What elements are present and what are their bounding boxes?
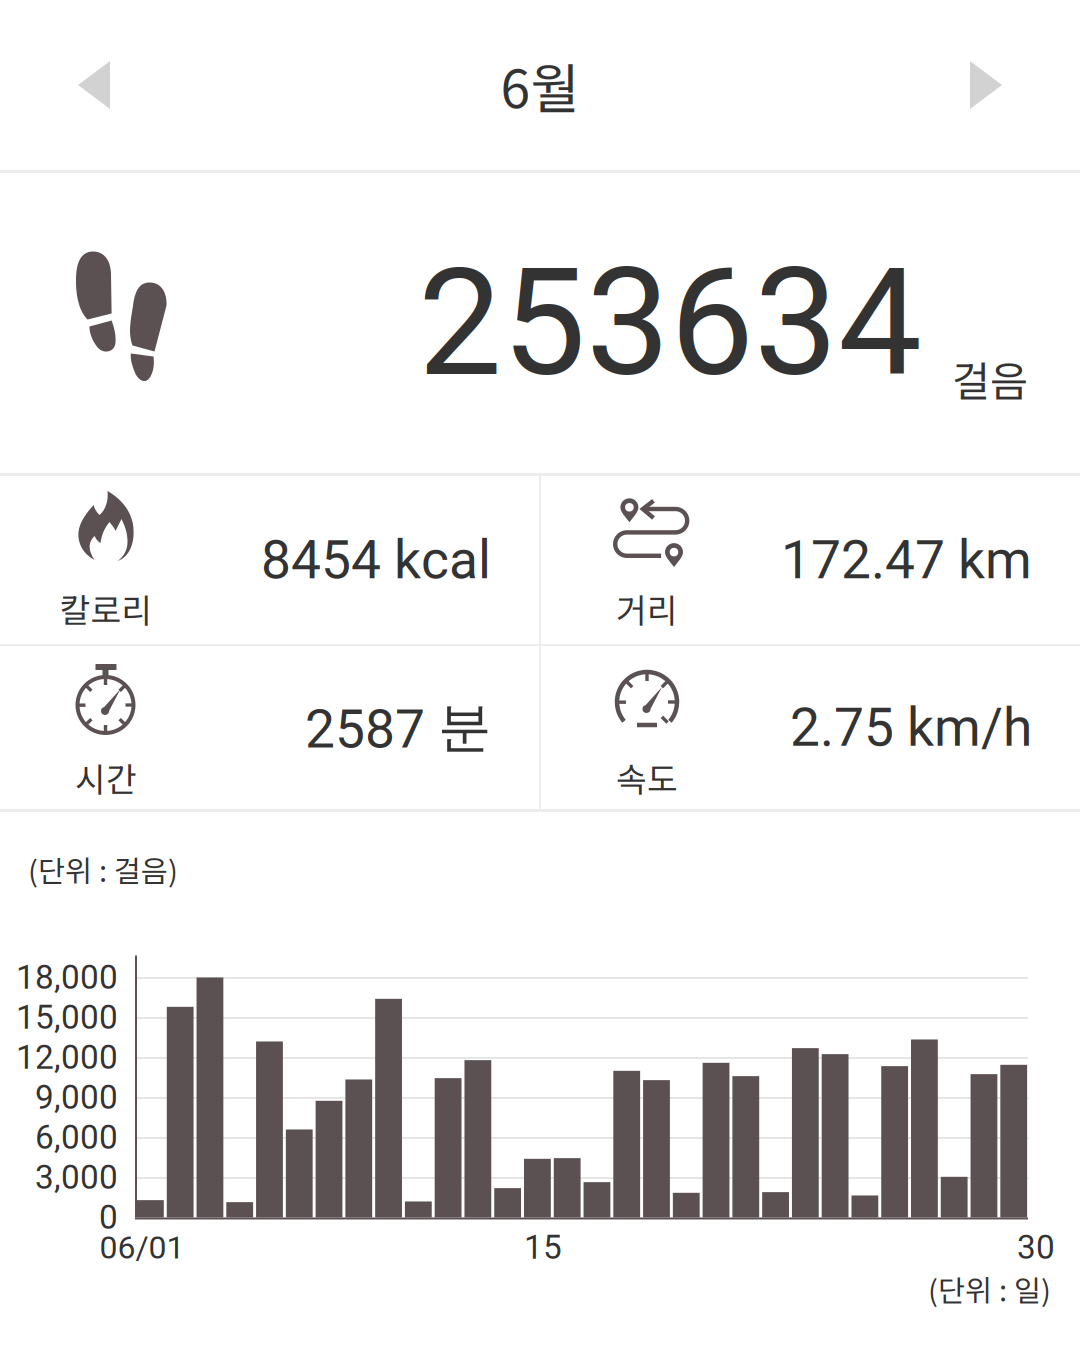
staticText: 15,000 bbox=[16, 998, 118, 1037]
staticText: 30 bbox=[1017, 1228, 1055, 1267]
staticText: 06/01 bbox=[99, 1229, 184, 1266]
staticText: 2.75 km/h bbox=[790, 696, 1032, 759]
staticText: 253634 bbox=[418, 235, 922, 410]
staticText: (단위 : 일) bbox=[928, 1267, 1051, 1310]
staticText: 시간 bbox=[75, 753, 137, 801]
staticText: (단위 : 걸음) bbox=[28, 848, 178, 890]
staticText: 6,000 bbox=[35, 1118, 118, 1157]
button[interactable]: Previous month bbox=[0, 15, 150, 155]
staticText: 속도 bbox=[616, 753, 678, 801]
staticText: 0 bbox=[99, 1198, 118, 1237]
staticText: 3,000 bbox=[35, 1158, 118, 1197]
staticText: 걸음 bbox=[952, 349, 1028, 408]
staticText: 8454 kcal bbox=[261, 529, 491, 591]
staticText: 칼로리 bbox=[59, 584, 152, 632]
staticText: 15 bbox=[524, 1228, 562, 1267]
staticText: 9,000 bbox=[35, 1078, 118, 1117]
button[interactable]: Next month bbox=[930, 15, 1080, 155]
staticText: 6월 bbox=[500, 46, 579, 124]
staticText: 거리 bbox=[616, 584, 678, 632]
staticText: 172.47 km bbox=[781, 529, 1032, 591]
staticText: 2587 분 bbox=[305, 694, 491, 761]
staticText: 18,000 bbox=[16, 958, 118, 997]
staticText: 12,000 bbox=[16, 1038, 118, 1077]
